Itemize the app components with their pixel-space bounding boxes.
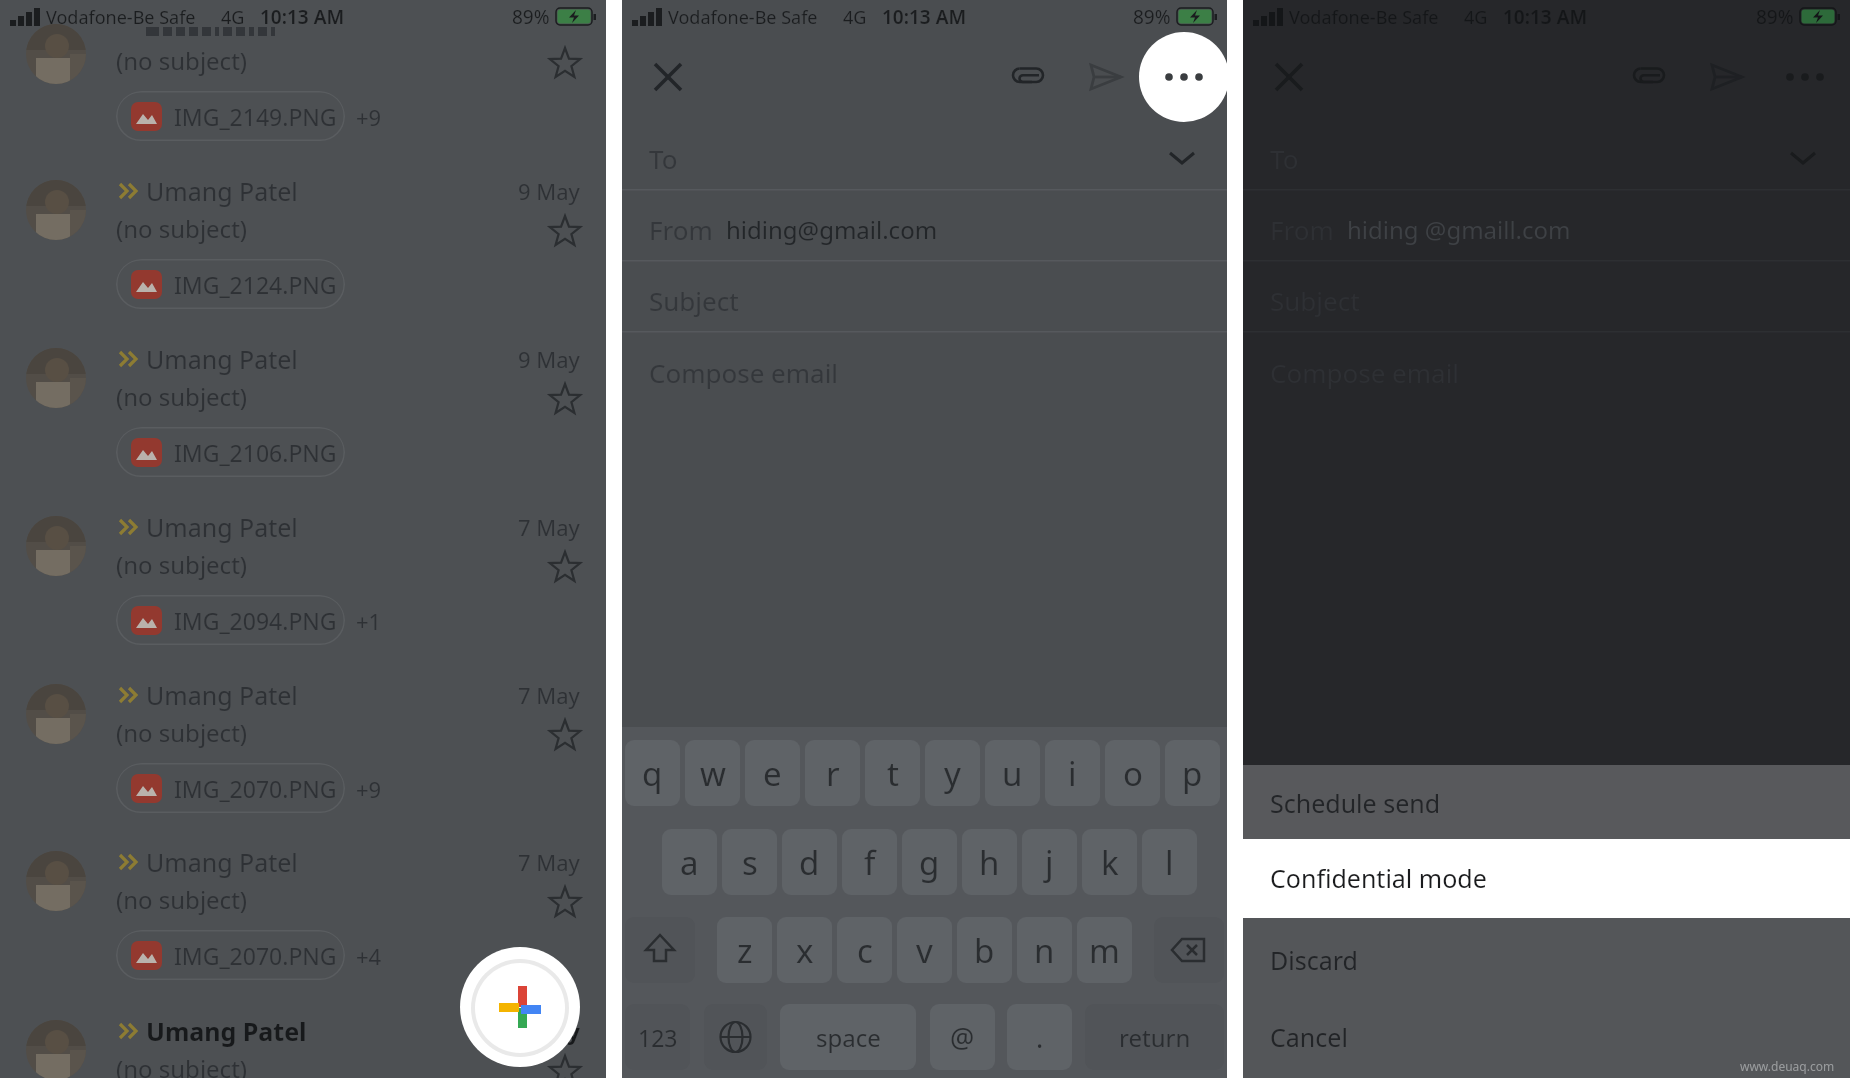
button[interactable]: e — [745, 740, 800, 806]
button[interactable]: f — [842, 829, 897, 895]
button[interactable]: t — [865, 740, 920, 806]
button[interactable]: q — [625, 740, 680, 806]
button[interactable] — [0, 167, 606, 333]
staticText: IMG_2070.PNG — [174, 773, 337, 804]
button[interactable]: l — [1142, 829, 1197, 895]
button[interactable]: c — [837, 917, 892, 983]
button[interactable]: w — [685, 740, 740, 806]
button[interactable]: Confidential mode — [1243, 839, 1850, 918]
staticText: Umang Patel — [146, 510, 298, 544]
button[interactable] — [1139, 32, 1229, 122]
button[interactable]: r — [805, 740, 860, 806]
button[interactable]: space — [780, 1004, 916, 1070]
button[interactable]: x — [777, 917, 832, 983]
button[interactable]: a — [662, 829, 717, 895]
button[interactable]: IMG_2124.PNG — [116, 259, 345, 311]
button[interactable]: b — [957, 917, 1012, 983]
staticText: Subject — [1270, 283, 1360, 318]
staticText: s — [742, 840, 758, 885]
staticText: 10:13 AM — [882, 4, 967, 30]
button[interactable]: IMG_2070.PNG — [116, 763, 345, 815]
button[interactable] — [1627, 55, 1671, 99]
staticText: 10:13 AM — [1503, 4, 1588, 30]
button[interactable] — [545, 548, 585, 588]
button[interactable]: IMG_2106.PNG — [116, 427, 345, 479]
button[interactable] — [1267, 55, 1311, 99]
button[interactable]: z — [717, 917, 772, 983]
staticText: IMG_2124.PNG — [174, 269, 337, 300]
button[interactable]: p — [1165, 740, 1220, 806]
button[interactable]: @ — [930, 1004, 995, 1070]
button[interactable]: return — [1085, 1004, 1224, 1070]
staticText: v — [916, 928, 933, 973]
button[interactable]: i — [1045, 740, 1100, 806]
staticText: Confidential mode — [1270, 861, 1487, 895]
button[interactable] — [1006, 55, 1050, 99]
button[interactable]: k — [1082, 829, 1137, 895]
button[interactable] — [0, 838, 606, 1004]
staticText: j — [1045, 840, 1054, 885]
button[interactable] — [625, 917, 695, 983]
button[interactable]: Schedule send — [1243, 765, 1850, 839]
button[interactable] — [1154, 917, 1224, 983]
button[interactable] — [545, 212, 585, 252]
button[interactable]: Discard — [1243, 918, 1850, 996]
button[interactable]: m — [1077, 917, 1132, 983]
staticText: Vodafone-Be Safe — [46, 5, 196, 30]
staticText: y — [944, 751, 961, 796]
button[interactable] — [545, 1052, 585, 1078]
button[interactable]: IMG_2149.PNG — [116, 91, 345, 143]
button[interactable]: o — [1105, 740, 1160, 806]
button[interactable] — [0, 671, 606, 837]
staticText: Subject — [649, 283, 739, 318]
button[interactable]: IMG_2094.PNG — [116, 595, 345, 647]
staticText: i — [1068, 751, 1077, 796]
button[interactable]: s — [722, 829, 777, 895]
button[interactable]: j — [1022, 829, 1077, 895]
button[interactable] — [1243, 191, 1850, 260]
button[interactable]: g — [902, 829, 957, 895]
button[interactable]: h — [962, 829, 1017, 895]
staticText: q — [642, 751, 663, 796]
staticText: 10:13 AM — [260, 4, 345, 30]
staticText: p — [1182, 751, 1203, 796]
button[interactable] — [1160, 53, 1208, 101]
button[interactable] — [545, 716, 585, 756]
button[interactable]: 123 — [625, 1004, 690, 1070]
button[interactable]: IMG_2070.PNG — [116, 930, 345, 982]
staticText: 89% — [1756, 4, 1794, 30]
button[interactable]: v — [897, 917, 952, 983]
button[interactable]: n — [1017, 917, 1072, 983]
staticText: hiding@gmail.com — [726, 213, 938, 246]
button[interactable]: u — [985, 740, 1040, 806]
button[interactable] — [0, 503, 606, 669]
staticText: IMG_2149.PNG — [174, 101, 337, 132]
staticText: u — [1002, 751, 1023, 796]
button[interactable] — [0, 1007, 606, 1078]
button[interactable] — [1083, 55, 1127, 99]
button[interactable]: d — [782, 829, 837, 895]
button[interactable]: Cancel — [1243, 996, 1850, 1078]
button[interactable] — [704, 1004, 767, 1070]
button[interactable] — [622, 191, 1227, 260]
staticText: 4G — [1464, 5, 1488, 30]
button[interactable] — [646, 55, 690, 99]
button[interactable] — [0, 335, 606, 501]
button[interactable] — [460, 947, 580, 1067]
button[interactable] — [545, 883, 585, 923]
button[interactable] — [0, 0, 606, 165]
button[interactable] — [545, 44, 585, 84]
button[interactable] — [545, 380, 585, 420]
button[interactable]: y — [925, 740, 980, 806]
